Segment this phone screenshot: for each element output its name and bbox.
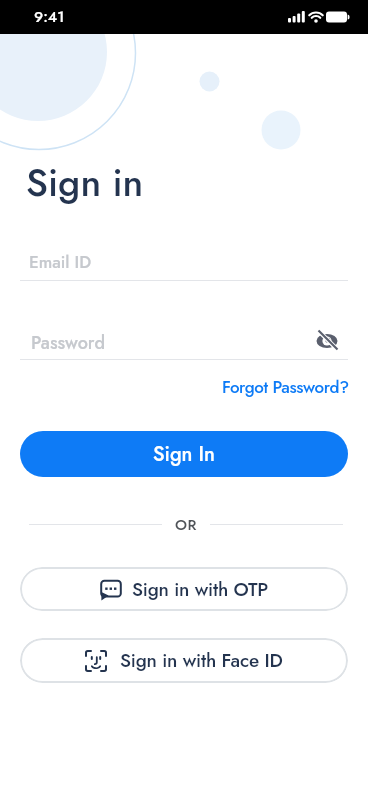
staticText: Sign In [153,440,215,469]
staticText: Sign in with OTP [132,576,269,603]
button[interactable]: Sign In [20,431,348,477]
staticText: Password [31,330,106,356]
staticText: Sign in with Face ID [120,647,283,674]
button[interactable] [316,330,338,352]
staticText: Sign in [26,155,144,210]
button[interactable]: Sign in with OTP [20,567,348,611]
staticText: 9:41 [34,6,65,28]
staticText: Email ID [29,250,92,275]
button[interactable]: Sign in with Face ID [20,638,348,683]
button[interactable]: Forgot Password? [222,375,349,400]
staticText: OR [175,514,197,535]
